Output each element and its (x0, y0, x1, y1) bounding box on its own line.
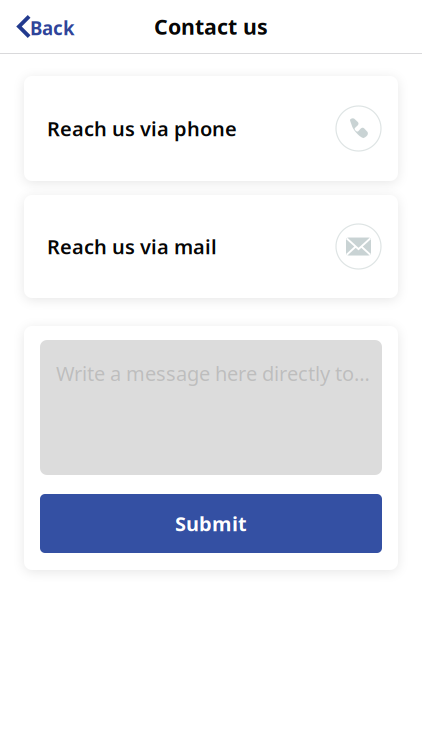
button[interactable]: Back (0, 3, 85, 49)
button[interactable]: Reach us via mail (24, 195, 398, 298)
staticText: Back (30, 16, 75, 40)
staticText: Reach us via phone (47, 115, 237, 142)
staticText: Reach us via mail (47, 233, 217, 260)
button[interactable]: Submit (40, 494, 382, 553)
staticText: Write a message here directly to… (56, 360, 370, 387)
staticText: Submit (175, 510, 247, 537)
button[interactable]: Write a message here directly to… (40, 340, 382, 475)
staticText: Contact us (154, 12, 268, 41)
button[interactable]: Reach us via phone (24, 76, 398, 181)
